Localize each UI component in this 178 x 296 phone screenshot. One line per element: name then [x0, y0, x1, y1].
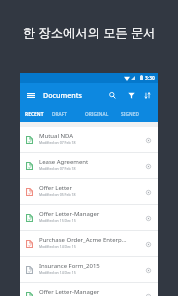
staticText: Modified on 07 Feb 18: [39, 140, 127, 145]
button[interactable]: Lease Agreement: [20, 153, 158, 179]
staticText: Offer Letter-Manager: [39, 210, 127, 218]
staticText: Mutual NDA: [39, 132, 127, 140]
button[interactable]: More info: [141, 289, 155, 296]
button[interactable]: More info: [141, 211, 155, 225]
button[interactable]: Sort: [139, 87, 155, 103]
button[interactable]: Insurance Form_2015: [20, 257, 158, 283]
staticText: RECENT: [25, 111, 44, 117]
staticText: Modified on 15 Dec 15: [39, 218, 127, 223]
button[interactable]: More info: [141, 133, 155, 147]
button[interactable]: Search: [104, 87, 120, 103]
staticText: ORIGINAL: [85, 111, 109, 117]
staticText: Lease Agreement: [39, 158, 127, 166]
button[interactable]: More info: [141, 237, 155, 251]
button[interactable]: Offer Letter: [20, 179, 158, 205]
staticText: 3:30: [145, 75, 155, 82]
button[interactable]: Documents: [43, 83, 82, 107]
staticText: Modified on 14 Dec 15: [39, 244, 127, 249]
staticText: Modified on 14 Dec 15: [39, 270, 127, 275]
staticText: Purchase Order_Acme Enterpri...: [39, 236, 127, 244]
staticText: SIGNED: [121, 111, 139, 117]
button[interactable]: Menu: [22, 86, 40, 104]
button[interactable]: SIGNED: [114, 107, 146, 122]
button[interactable]: Offer Letter-Manager: [20, 283, 158, 296]
staticText: Offer Letter-Manager: [39, 288, 127, 296]
button[interactable]: More info: [141, 159, 155, 173]
staticText: Insurance Form_2015: [39, 262, 127, 270]
staticText: Offer Letter: [39, 184, 127, 192]
staticText: 한 장소에서의 모든 문서: [23, 24, 156, 41]
button[interactable]: Offer Letter-Manager: [20, 205, 158, 231]
button[interactable]: More info: [141, 263, 155, 277]
button[interactable]: Purchase Order_Acme Enterpri...: [20, 231, 158, 257]
staticText: Modified on 05 Feb 18: [39, 192, 127, 197]
button[interactable]: DRAFT: [44, 107, 76, 122]
staticText: Documents: [43, 90, 82, 100]
staticText: Modified on 07 Feb 18: [39, 166, 127, 171]
button[interactable]: ORIGINAL: [81, 107, 113, 122]
staticText: DRAFT: [52, 111, 68, 117]
button[interactable]: RECENT: [18, 107, 50, 122]
button[interactable]: Mutual NDA: [20, 127, 158, 153]
button[interactable]: Filter: [123, 87, 139, 103]
button[interactable]: More info: [141, 185, 155, 199]
